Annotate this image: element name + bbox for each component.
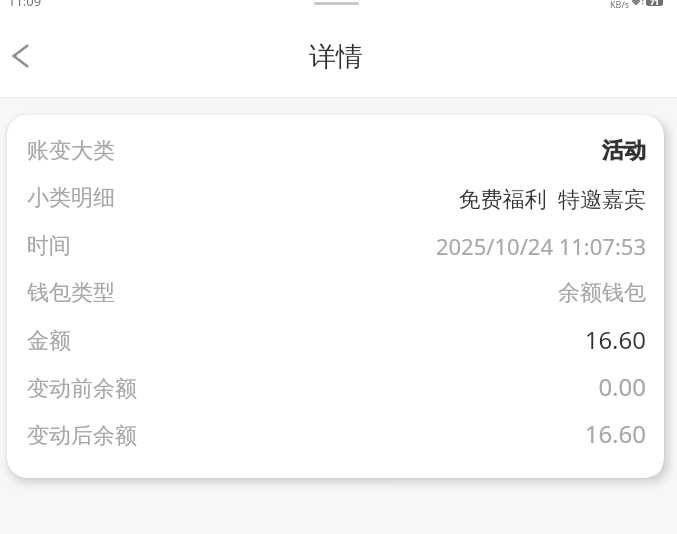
staticText: 余额钱包 [558,279,646,307]
button[interactable]: 小类明细 [7,174,664,222]
staticText: 钱包类型 [27,279,115,307]
button[interactable]: 变动前余额 [7,365,664,412]
staticText: 0.00 [598,370,646,403]
button[interactable]: 账变大类 [7,127,664,174]
staticText: 16.60 [584,417,646,450]
button[interactable]: 金额 [7,317,664,365]
staticText: 时间 [27,232,71,260]
button[interactable]: 钱包类型 [7,269,664,317]
staticText: 变动后余额 [27,422,137,450]
staticText: 0.0 [613,0,626,2]
staticText: 免费福利 特邀嘉宾 [458,183,646,213]
staticText: 11:09 [8,0,42,10]
staticText: 金额 [27,327,71,355]
button[interactable]: 变动后余额 [7,412,664,459]
staticText: 账变大类 [27,137,115,165]
staticText: 小类明细 [27,184,115,212]
staticText: 16.60 [584,323,646,356]
staticText: 变动前余额 [27,375,137,403]
staticText: 详情 [309,40,363,74]
staticText: 71 [650,0,660,6]
staticText: KB/s [610,0,630,10]
staticText: 活动 [602,137,646,165]
staticText: 2025/10/24 11:07:53 [435,231,646,261]
button[interactable]: 时间 [7,222,664,269]
button[interactable]: Back [0,32,45,80]
